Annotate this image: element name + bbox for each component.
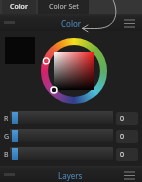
staticText: 0 — [120, 114, 125, 124]
staticText: Color — [10, 2, 28, 12]
button[interactable] — [10, 129, 113, 142]
staticText: Color — [61, 18, 82, 29]
staticText: G — [4, 132, 10, 142]
staticText: Layers — [58, 170, 83, 181]
staticText: 0 — [120, 150, 125, 160]
button[interactable]: 0 — [116, 130, 138, 143]
staticText: R — [4, 114, 9, 124]
staticText: Color Set — [49, 2, 79, 12]
button[interactable]: Color Set — [38, 0, 89, 14]
staticText: B — [4, 150, 9, 160]
button[interactable] — [10, 147, 113, 160]
button[interactable]: Color — [2, 0, 36, 14]
button[interactable]: 0 — [116, 148, 138, 161]
staticText: 0 — [120, 132, 125, 142]
button[interactable] — [10, 111, 113, 124]
button[interactable]: 0 — [116, 112, 138, 125]
button[interactable]: Layers panel menu — [121, 169, 138, 181]
button[interactable]: Color panel menu — [121, 17, 138, 29]
